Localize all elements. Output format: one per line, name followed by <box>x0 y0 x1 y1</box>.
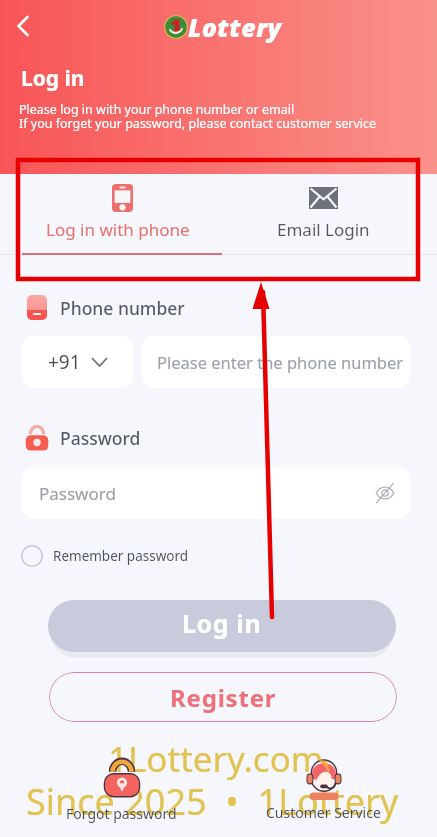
staticText: Log in <box>21 64 85 93</box>
staticText: If you forget your password, please cont… <box>19 115 377 132</box>
staticText: 1Lottery.com <box>108 735 324 783</box>
button[interactable]: Register <box>49 672 397 722</box>
staticText: Forgot password <box>66 804 177 823</box>
staticText: Since 2025 • 1Lottery <box>26 777 399 826</box>
staticText: Email Login <box>277 218 370 241</box>
button[interactable]: Customer Service <box>247 758 397 820</box>
staticText: Password <box>60 426 141 450</box>
button[interactable]: Password <box>22 467 410 519</box>
staticText: Lottery <box>188 10 282 44</box>
button[interactable]: Please enter the phone number <box>142 336 410 388</box>
staticText: +91 <box>48 349 81 375</box>
button[interactable]: Log in <box>48 600 396 652</box>
staticText: Remember password <box>53 547 189 565</box>
staticText: Please log in with your phone number or … <box>19 101 295 118</box>
button[interactable]: +91 <box>22 336 133 388</box>
staticText: Customer Service <box>266 803 381 822</box>
button[interactable]: Back <box>0 4 44 48</box>
staticText: Log in <box>182 606 262 640</box>
button[interactable]: Remember password <box>21 544 189 567</box>
button[interactable]: Log in with phone <box>0 174 219 254</box>
staticText: Password <box>39 482 116 505</box>
staticText: Phone number <box>60 296 185 320</box>
staticText: Please enter the phone number <box>157 351 404 373</box>
button[interactable]: Show password <box>369 477 401 509</box>
button[interactable]: Email Login <box>219 174 437 254</box>
staticText: Register <box>170 681 277 714</box>
staticText: Log in with phone <box>46 218 190 241</box>
button[interactable]: Forgot password <box>45 758 195 820</box>
